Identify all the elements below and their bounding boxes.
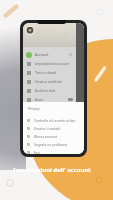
button[interactable]: Account — [23, 50, 84, 59]
staticText: Archivio chat — [35, 88, 56, 93]
staticText: Esci — [34, 150, 40, 154]
button[interactable]: Segnala un problema — [23, 140, 84, 148]
staticText: Gestisci notifiche — [35, 79, 63, 84]
button[interactable]: Archivio chat — [23, 86, 84, 95]
staticText: Account — [35, 52, 49, 57]
staticText: Aiuto — [35, 97, 44, 102]
staticText: Segnala un problema — [34, 142, 68, 146]
button[interactable]: Gestisci notifiche — [23, 77, 84, 86]
staticText: Gestisci i contatti — [34, 126, 61, 130]
staticText: Impostazioni account — [35, 61, 70, 66]
staticText: Impostazioni dell' account — [7, 166, 97, 174]
staticText: Privacy — [28, 106, 40, 111]
button[interactable]: Impostazioni account — [23, 59, 84, 68]
button[interactable]: Aiuto — [23, 95, 84, 104]
button[interactable]: Temi e sfondi — [23, 68, 84, 77]
button[interactable]: Gestisci i contatti — [23, 124, 84, 132]
staticText: Blocca account — [34, 134, 58, 138]
button[interactable]: Esci — [23, 148, 84, 154]
staticText: Controlla chi accede ai dati — [34, 118, 76, 122]
staticText: Temi e sfondi — [35, 70, 57, 75]
button[interactable]: Controlla chi accede ai dati — [23, 116, 84, 124]
button[interactable]: Blocca account — [23, 132, 84, 140]
